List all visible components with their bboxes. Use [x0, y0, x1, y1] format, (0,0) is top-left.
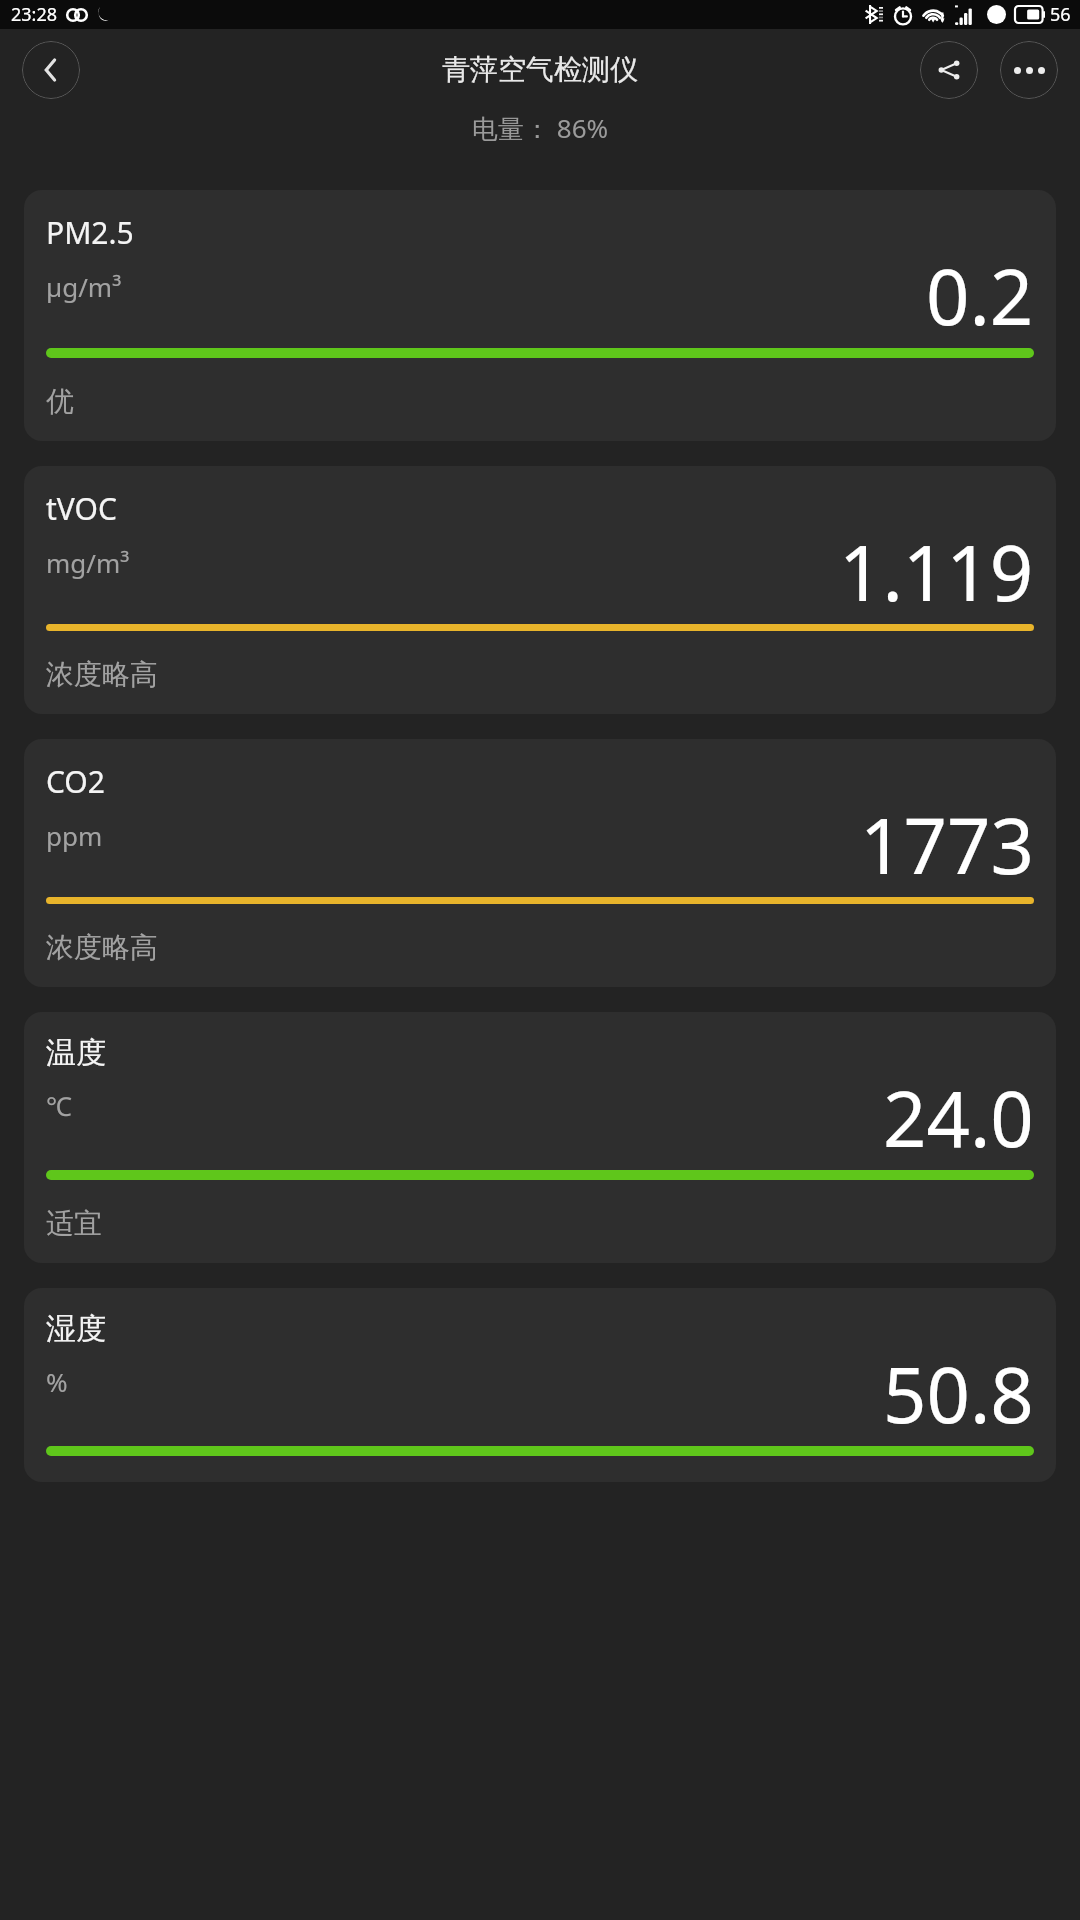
staticText: CO2	[46, 761, 105, 802]
staticText: 50.8	[883, 1342, 1034, 1446]
button[interactable]: 湿度	[24, 1288, 1056, 1482]
staticText: µg/m³	[46, 269, 122, 304]
staticText: 适宜	[46, 1206, 102, 1241]
staticText: 优	[46, 384, 74, 419]
button[interactable]: CO2	[24, 739, 1056, 987]
button[interactable]: More options	[1000, 41, 1058, 99]
button[interactable]: tVOC	[24, 466, 1056, 714]
button[interactable]: 温度	[24, 1012, 1056, 1263]
staticText: 浓度略高	[46, 657, 158, 692]
staticText: 青萍空气检测仪	[442, 52, 638, 87]
staticText: 电量： 86%	[472, 110, 609, 146]
staticText: ppm	[46, 818, 103, 853]
staticText: PM2.5	[46, 212, 134, 253]
staticText: 温度	[46, 1034, 106, 1072]
staticText: mg/m³	[46, 545, 130, 580]
staticText: tVOC	[46, 488, 117, 529]
staticText: 23:28	[11, 2, 58, 27]
staticText: 湿度	[46, 1310, 106, 1348]
button[interactable]: PM2.5	[24, 190, 1056, 441]
button[interactable]: Back	[22, 41, 80, 99]
staticText: %	[46, 1364, 68, 1399]
staticText: ℃	[46, 1088, 72, 1123]
staticText: 56	[1050, 2, 1071, 27]
staticText: 1773	[860, 793, 1034, 897]
staticText: 0.2	[926, 244, 1034, 348]
staticText: 浓度略高	[46, 930, 158, 965]
staticText: 24.0	[883, 1066, 1034, 1170]
staticText: 1.119	[839, 520, 1034, 624]
button[interactable]: Share	[920, 41, 978, 99]
